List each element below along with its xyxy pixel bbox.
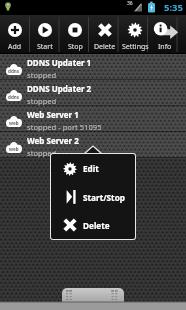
button[interactable]: Start (30, 15, 60, 54)
staticText: DDNS Updater 1 (27, 57, 92, 68)
staticText: Web Server 1 (27, 109, 79, 120)
staticText: Web Server 2 (27, 135, 79, 146)
staticText: Edit (83, 163, 99, 174)
staticText: Stop (68, 42, 83, 52)
button[interactable]: ddns (0, 54, 186, 80)
button[interactable]: Start/Stop (51, 183, 135, 211)
staticText: ddns (8, 68, 20, 74)
staticText: Start (37, 42, 53, 52)
staticText: stopped (27, 70, 57, 80)
staticText: Start/Stop (83, 192, 125, 203)
staticText: 36 (127, 0, 133, 7)
staticText: web (9, 120, 19, 126)
button[interactable]: Info (150, 15, 180, 54)
staticText: Info (158, 42, 172, 52)
staticText: stopped (27, 148, 57, 158)
staticText: stopped - port 51095 (27, 122, 102, 132)
button[interactable]: Delete (90, 15, 120, 54)
button[interactable]: Delete (51, 211, 135, 239)
staticText: 5:35 (164, 1, 183, 14)
staticText: web (9, 146, 19, 152)
button[interactable]: Edit (51, 154, 135, 183)
button[interactable]: Stop (60, 15, 90, 54)
button[interactable]: web (0, 132, 186, 158)
staticText: Delete (94, 42, 116, 52)
staticText: Delete (83, 220, 110, 231)
button[interactable]: ddns (0, 80, 186, 106)
button[interactable]: Settings (120, 15, 150, 54)
staticText: DDNS Updater 2 (27, 83, 92, 94)
staticText: Settings (122, 42, 149, 52)
staticText: Add (8, 42, 22, 52)
button[interactable]: Add (0, 15, 30, 54)
button[interactable]: web (0, 106, 186, 132)
staticText: stopped (27, 96, 57, 106)
staticText: ddns (8, 94, 20, 100)
